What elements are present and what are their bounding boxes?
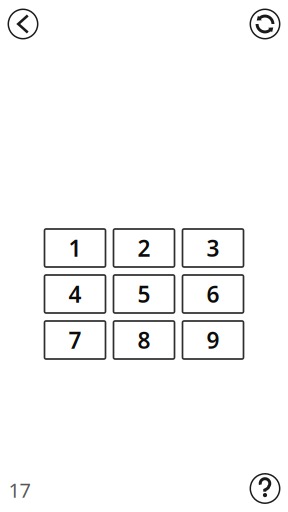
staticText: 1	[68, 233, 81, 263]
staticText: 6	[206, 279, 219, 309]
button[interactable]: Back	[7, 8, 39, 40]
staticText: 17	[8, 477, 30, 503]
button[interactable]: 6	[182, 275, 243, 313]
staticText: 9	[206, 325, 219, 355]
button[interactable]: 8	[113, 321, 174, 359]
staticText: 4	[68, 279, 81, 309]
staticText: 5	[137, 279, 150, 309]
button[interactable]: 3	[182, 229, 243, 267]
staticText: 7	[68, 325, 81, 355]
staticText: 3	[206, 233, 219, 263]
button[interactable]: 9	[182, 321, 243, 359]
button[interactable]: Help	[249, 472, 281, 504]
staticText: 8	[137, 325, 150, 355]
button[interactable]: 2	[113, 229, 174, 267]
button[interactable]: 4	[44, 275, 105, 313]
button[interactable]: 5	[113, 275, 174, 313]
button[interactable]: 1	[44, 229, 105, 267]
button[interactable]: 7	[44, 321, 105, 359]
staticText: 2	[137, 233, 150, 263]
button[interactable]: Refresh	[249, 8, 281, 40]
